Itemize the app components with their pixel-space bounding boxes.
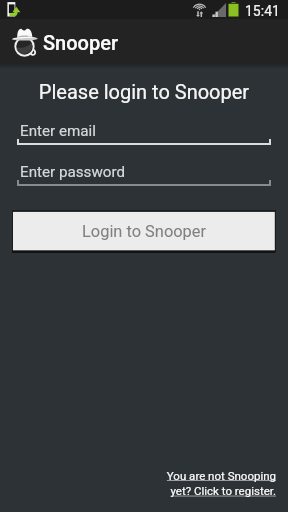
button[interactable]: Login to Snooper [12, 210, 276, 253]
other: USB transfer active [7, 2, 21, 17]
staticText: Please login to Snooper [0, 80, 288, 103]
button[interactable]: Enter password [17, 162, 271, 186]
button[interactable]: You are not Snooping yet? Click to regis… [0, 469, 276, 498]
staticText: Enter password [20, 163, 126, 181]
other: Snooper [12, 27, 38, 56]
staticText: 15:41 [245, 3, 280, 19]
button[interactable]: Enter email [17, 121, 271, 145]
other: Battery full [228, 2, 239, 17]
staticText: Login to Snooper [82, 222, 207, 241]
staticText: Enter email [20, 122, 96, 140]
staticText: Snooper [43, 31, 118, 54]
other: Wi-Fi connected [192, 2, 207, 17]
other: Mobile signal [212, 3, 226, 17]
